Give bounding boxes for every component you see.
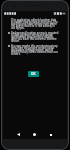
staticText: Background location access is required s… [11,31,59,43]
button[interactable]: OK [28,71,39,77]
button[interactable]: Recents [47,131,54,138]
staticText: You may revoke this permission at any ti… [11,44,59,56]
staticText: OK [31,72,36,76]
staticText: This application collects location data … [11,18,59,30]
button[interactable]: Back [15,131,22,138]
button[interactable]: Home [31,131,38,138]
